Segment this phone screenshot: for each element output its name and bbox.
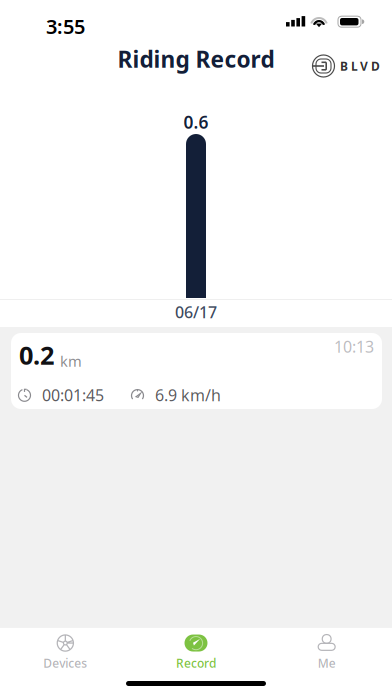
button[interactable]: BLVD brand — [312, 51, 382, 81]
staticText: Record — [176, 655, 216, 671]
staticText: 10:13 — [334, 336, 374, 357]
staticText: 00:01:45 — [42, 384, 104, 406]
staticText: BLVD — [340, 58, 380, 74]
staticText: Me — [318, 655, 336, 671]
staticText: Devices — [43, 655, 87, 671]
button[interactable]: Record — [131, 628, 261, 677]
staticText: Riding Record — [117, 44, 274, 74]
staticText: 0.6 — [183, 110, 208, 133]
button[interactable]: Me — [261, 628, 392, 677]
staticText: 6.9 km/h — [155, 384, 221, 406]
staticText: 06/17 — [175, 301, 217, 323]
staticText: km — [60, 351, 82, 371]
staticText: 0.2 — [19, 338, 54, 372]
staticText: 3:55 — [46, 13, 85, 40]
button[interactable]: 0.2 — [11, 333, 382, 409]
button[interactable]: Devices — [0, 628, 131, 677]
